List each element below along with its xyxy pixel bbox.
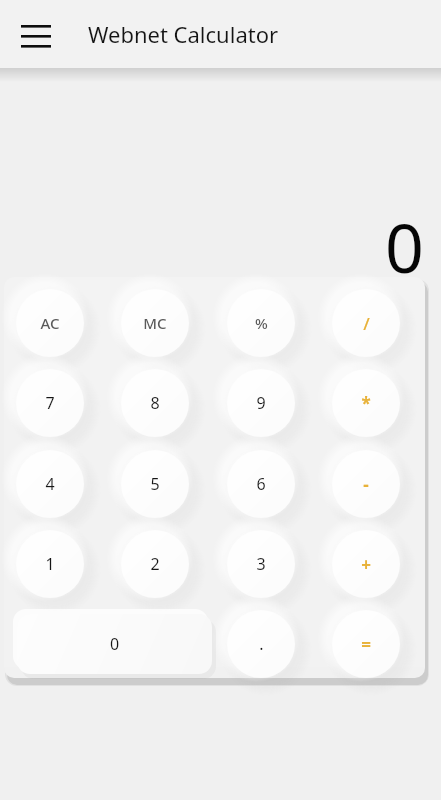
button[interactable]: = [332, 610, 400, 678]
staticText: 5 [150, 473, 160, 495]
button[interactable]: 7 [16, 369, 84, 437]
button[interactable]: 3 [227, 530, 295, 598]
button[interactable]: AC [16, 289, 84, 357]
staticText: MC [143, 313, 167, 333]
staticText: 3 [256, 553, 266, 575]
staticText: 8 [150, 392, 160, 414]
staticText: = [361, 633, 371, 656]
staticText: 2 [150, 553, 160, 575]
staticText: Webnet Calculator [88, 19, 279, 49]
button[interactable]: + [332, 530, 400, 598]
button[interactable]: 8 [121, 369, 189, 437]
staticText: * [361, 392, 371, 415]
button[interactable]: 6 [227, 450, 295, 518]
button[interactable]: 2 [121, 530, 189, 598]
staticText: 1 [45, 553, 55, 575]
staticText: 4 [45, 473, 55, 495]
staticText: % [255, 313, 268, 333]
button[interactable]: 0 [17, 614, 212, 674]
staticText: 0 [385, 200, 424, 280]
button[interactable]: 1 [16, 530, 84, 598]
button[interactable]: Open navigation menu [14, 14, 58, 58]
staticText: - [363, 473, 369, 496]
button[interactable]: 4 [16, 450, 84, 518]
staticText: 7 [45, 392, 55, 414]
button[interactable]: / [332, 289, 400, 357]
button[interactable]: - [332, 450, 400, 518]
staticText: / [363, 312, 370, 335]
button[interactable]: 9 [227, 369, 295, 437]
button[interactable]: 5 [121, 450, 189, 518]
staticText: AC [40, 313, 60, 333]
button[interactable]: . [227, 610, 295, 678]
button[interactable]: % [227, 289, 295, 357]
staticText: 9 [256, 392, 266, 414]
button[interactable]: * [332, 369, 400, 437]
staticText: 0 [110, 633, 120, 655]
staticText: 6 [256, 473, 266, 495]
button[interactable]: MC [121, 289, 189, 357]
staticText: + [361, 553, 371, 576]
staticText: . [259, 633, 264, 655]
